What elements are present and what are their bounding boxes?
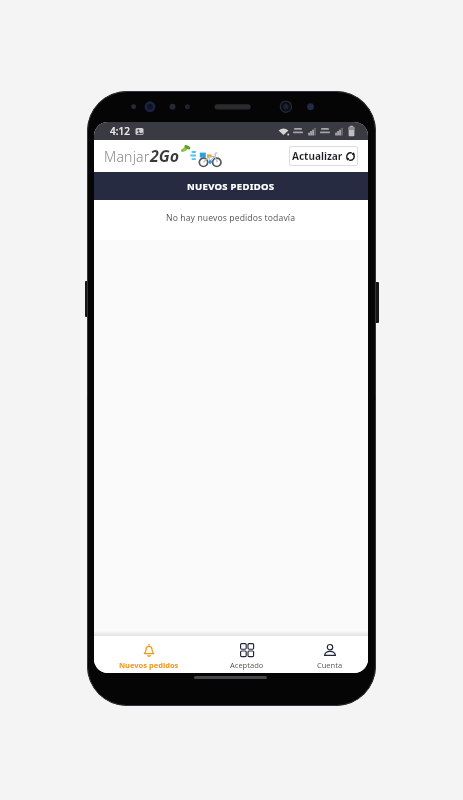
button[interactable]: Actualizar [289, 146, 358, 166]
staticText: Manjar [104, 147, 150, 166]
staticText: 2Go [150, 145, 180, 167]
staticText: 4:12 [110, 124, 130, 138]
button[interactable]: Nuevos pedidos [109, 635, 189, 673]
staticText: Actualizar [292, 149, 343, 163]
button[interactable]: Cuenta [290, 635, 368, 673]
staticText: Aceptado [230, 660, 264, 670]
staticText: NUEVOS PEDIDOS [187, 180, 275, 193]
button[interactable]: Aceptado [207, 635, 287, 673]
staticText: Cuenta [317, 660, 343, 670]
staticText: No hay nuevos pedidos todavía [166, 212, 296, 224]
staticText: Nuevos pedidos [119, 660, 179, 670]
